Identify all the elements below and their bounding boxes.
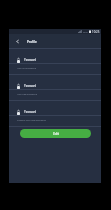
button[interactable]: Password <box>9 49 101 75</box>
staticText: 35% <box>83 30 88 33</box>
button[interactable]: Password <box>9 75 101 101</box>
staticText: Password <box>24 58 37 62</box>
staticText: Password <box>24 84 37 88</box>
staticText: Your old password <box>17 67 36 70</box>
staticText: 10:25 <box>92 30 100 34</box>
staticText: Password <box>24 110 37 114</box>
button[interactable]: Edit <box>20 129 91 138</box>
staticText: Your new password <box>17 93 38 96</box>
button[interactable]: Password <box>9 101 101 127</box>
staticText: Profile <box>27 40 37 44</box>
button[interactable]: Back <box>14 38 21 45</box>
staticText: Confirm your new password <box>17 119 46 122</box>
staticText: Edit <box>53 132 59 136</box>
